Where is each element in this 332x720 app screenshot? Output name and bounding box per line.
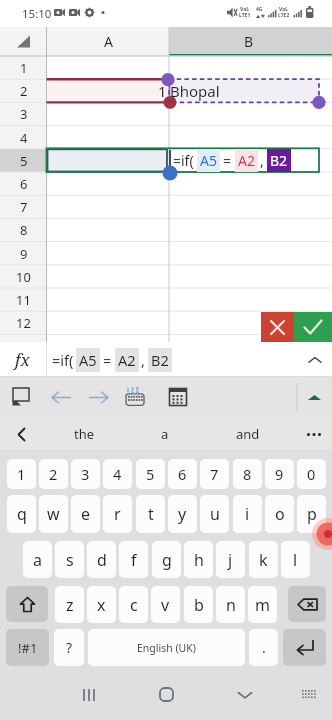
button[interactable]: v: [151, 586, 180, 623]
staticText: n: [226, 594, 236, 616]
button[interactable]: 8: [233, 459, 262, 489]
staticText: English (UK): [137, 641, 196, 655]
button[interactable]: 1: [7, 459, 36, 489]
staticText: ,: [141, 350, 145, 370]
staticText: m: [255, 594, 270, 616]
button[interactable]: h: [184, 541, 213, 578]
button[interactable]: Switch keyboard: [288, 669, 328, 720]
button[interactable]: 7: [200, 459, 229, 489]
staticText: x: [97, 594, 106, 616]
button[interactable]: !#1: [6, 629, 49, 666]
button[interactable]: 3: [71, 459, 100, 489]
staticText: =: [223, 151, 232, 170]
button[interactable]: 2: [39, 459, 68, 489]
button[interactable]: Date picker: [162, 377, 193, 417]
button[interactable]: e: [71, 495, 100, 533]
button[interactable]: r: [103, 495, 132, 533]
staticText: VoL: [240, 6, 250, 13]
button[interactable]: the: [44, 417, 124, 451]
staticText: =: [103, 350, 112, 370]
button[interactable]: Recents: [69, 669, 109, 720]
staticText: g: [162, 549, 172, 571]
button[interactable]: Previous cell: [46, 377, 77, 417]
button[interactable]: b: [184, 586, 213, 623]
staticText: j: [228, 549, 233, 571]
button[interactable]: j: [216, 541, 245, 578]
button[interactable]: 6: [168, 459, 197, 489]
button[interactable]: g: [152, 541, 181, 578]
staticText: 5: [20, 152, 28, 170]
button[interactable]: l: [281, 541, 310, 578]
staticText: 4G: [256, 6, 263, 13]
button[interactable]: Next cell: [83, 377, 114, 417]
button[interactable]: s: [55, 541, 84, 578]
button[interactable]: English (UK): [88, 629, 245, 666]
button[interactable]: Home: [146, 669, 186, 720]
button[interactable]: c: [119, 586, 148, 623]
button[interactable]: Back: [0, 417, 42, 451]
staticText: 12: [16, 314, 31, 332]
button[interactable]: Expand formula bar: [298, 343, 332, 377]
button[interactable]: m: [248, 586, 277, 623]
staticText: 11: [16, 291, 31, 309]
button[interactable]: Confirm: [294, 312, 332, 342]
button[interactable]: x: [87, 586, 116, 623]
button[interactable]: Backspace: [288, 586, 326, 622]
button[interactable]: i: [233, 495, 262, 533]
staticText: =if(: [173, 151, 194, 170]
button[interactable]: y: [168, 495, 197, 533]
button[interactable]: q: [7, 495, 36, 533]
staticText: 8: [243, 464, 252, 484]
button[interactable]: More suggestions: [296, 417, 332, 451]
button[interactable]: a: [125, 417, 205, 451]
staticText: p: [307, 503, 317, 525]
staticText: A2: [238, 151, 255, 170]
button[interactable]: 0: [297, 459, 326, 489]
staticText: 0: [307, 464, 316, 484]
button[interactable]: d: [87, 541, 116, 578]
staticText: LTE2: [278, 12, 290, 19]
button[interactable]: Shift: [6, 586, 48, 622]
button[interactable]: p: [297, 495, 326, 533]
staticText: 15:10: [22, 6, 52, 22]
staticText: o: [275, 503, 285, 525]
button[interactable]: f: [119, 541, 148, 578]
button[interactable]: 9: [265, 459, 294, 489]
staticText: 7: [20, 198, 28, 216]
button[interactable]: z: [55, 586, 84, 623]
button[interactable]: Cancel: [261, 312, 294, 342]
staticText: 7: [210, 464, 219, 484]
button[interactable]: and: [208, 417, 288, 451]
button[interactable]: Toggle input: [5, 377, 36, 417]
staticText: B2: [151, 350, 169, 370]
button[interactable]: w: [39, 495, 68, 533]
button[interactable]: Hide keyboard: [225, 669, 265, 720]
staticText: the: [74, 425, 95, 443]
staticText: 3: [20, 105, 28, 123]
button[interactable]: Number pad: [119, 377, 150, 417]
staticText: b: [194, 594, 204, 616]
staticText: A2: [118, 350, 136, 370]
staticText: s: [66, 549, 74, 571]
staticText: 4: [113, 464, 122, 484]
button[interactable]: 4: [103, 459, 132, 489]
button[interactable]: u: [200, 495, 229, 533]
button[interactable]: a: [23, 541, 52, 578]
staticText: l: [293, 549, 298, 571]
button[interactable]: Enter: [283, 629, 326, 666]
button[interactable]: .: [249, 629, 278, 666]
button[interactable]: n: [216, 586, 245, 623]
button[interactable]: k: [249, 541, 278, 578]
staticText: LTE1: [239, 12, 251, 19]
staticText: !#1: [18, 639, 38, 657]
staticText: 9: [20, 245, 28, 263]
button[interactable]: Collapse toolbar: [299, 382, 329, 412]
button[interactable]: o: [265, 495, 294, 533]
staticText: h: [194, 549, 204, 571]
button[interactable]: t: [136, 495, 165, 533]
button[interactable]: ?: [54, 629, 84, 666]
staticText: r: [114, 503, 121, 525]
staticText: a: [161, 425, 169, 443]
staticText: w: [47, 503, 60, 525]
button[interactable]: 5: [136, 459, 165, 489]
